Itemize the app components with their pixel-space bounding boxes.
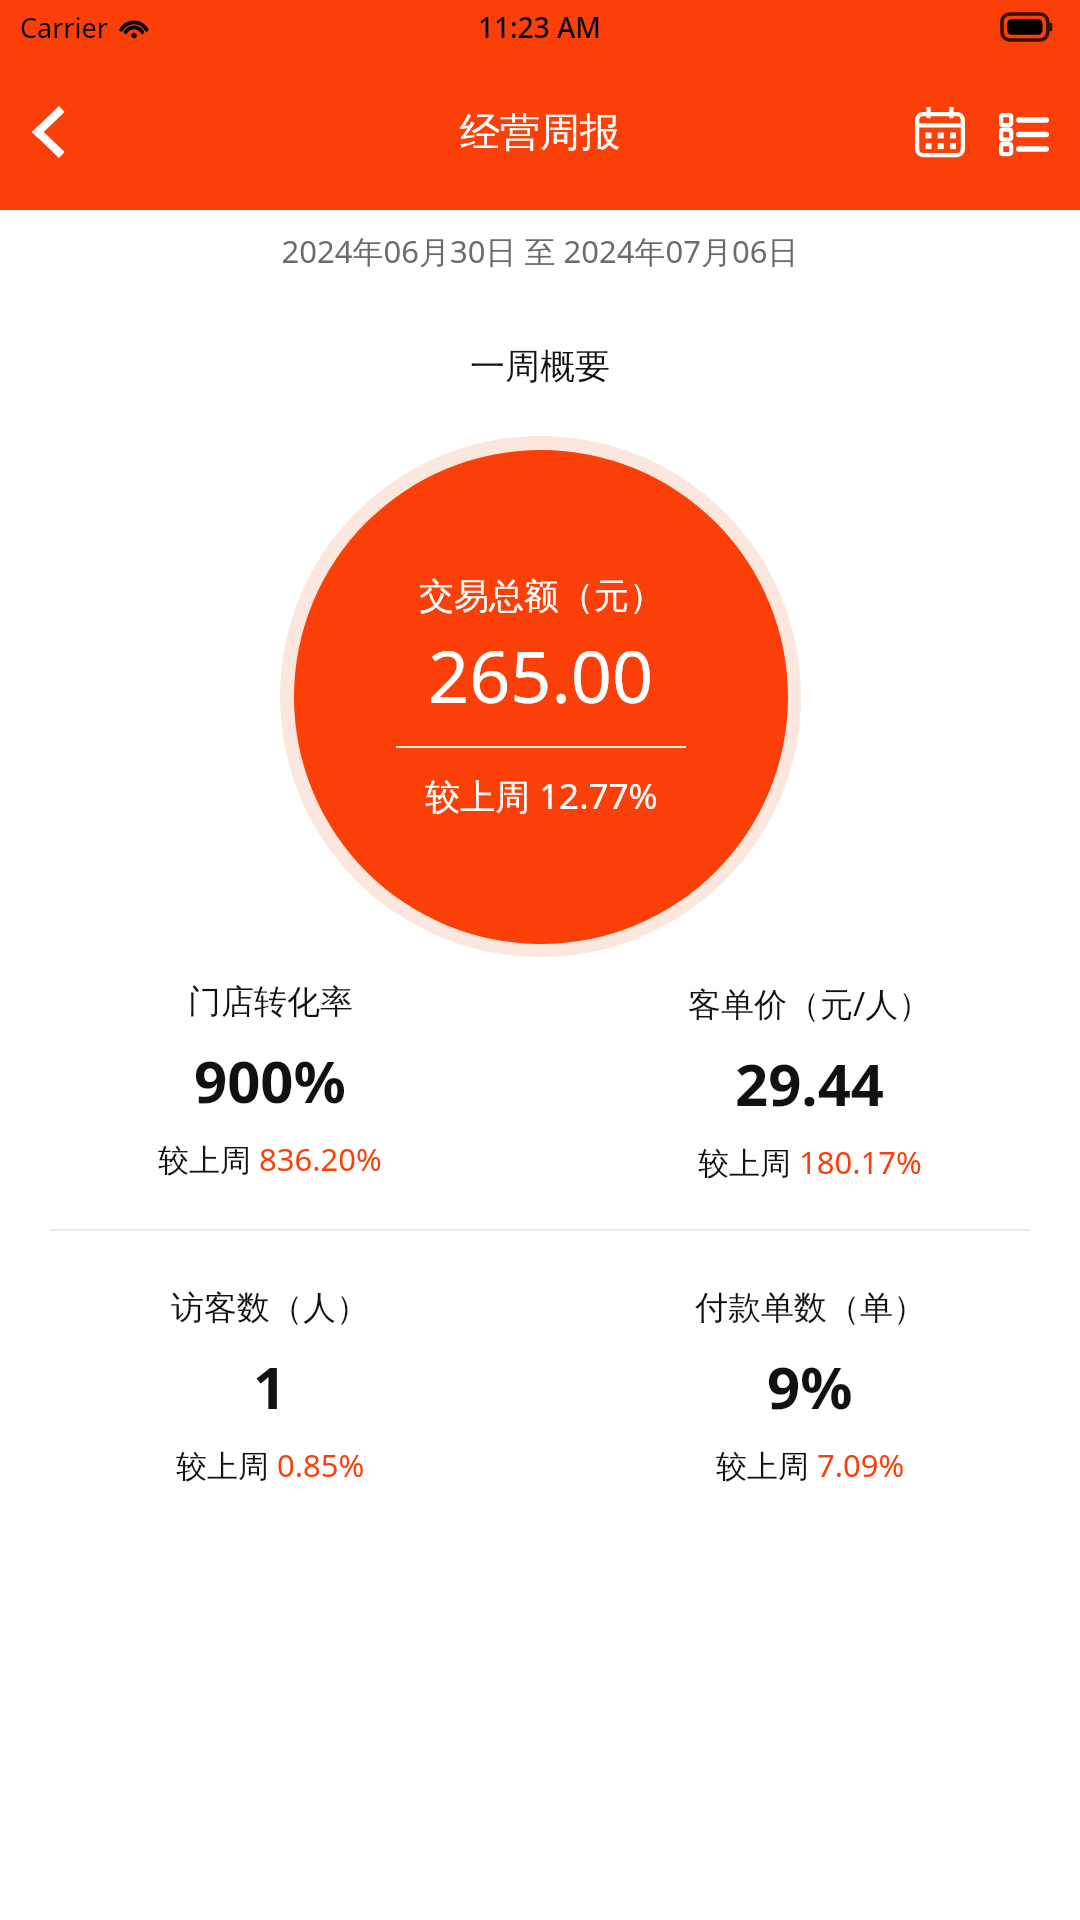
staticText: 900% [194, 1041, 346, 1120]
button[interactable]: List [982, 90, 1066, 174]
button[interactable]: Back [0, 84, 96, 180]
staticText: 2024年06月30日 至 2024年07月06日 [0, 230, 1080, 272]
staticText: 一周概要 [0, 344, 1080, 388]
staticText: 较上周 180.17% [698, 1141, 922, 1183]
button[interactable]: 交易总额（元） [294, 450, 788, 944]
staticText: 访客数（人） [171, 1287, 369, 1329]
staticText: 交易总额（元） [419, 574, 664, 618]
staticText: 较上周 836.20% [158, 1138, 382, 1180]
staticText: 较上周 12.77% [425, 772, 658, 820]
staticText: Carrier [20, 9, 108, 46]
staticText: 客单价（元/人） [688, 981, 932, 1026]
staticText: 较上周 7.09% [716, 1444, 905, 1486]
button[interactable]: 访客数（人） [0, 1283, 540, 1490]
staticText: 11:23 AM [478, 8, 602, 46]
staticText: 经营周报 [460, 107, 620, 157]
staticText: 265.00 [428, 626, 654, 724]
button[interactable]: Calendar [898, 90, 982, 174]
button[interactable]: 门店转化率 [0, 977, 540, 1184]
staticText: 1 [253, 1347, 287, 1426]
staticText: 9% [767, 1347, 853, 1426]
staticText: 较上周 0.85% [176, 1444, 365, 1486]
staticText: 付款单数（单） [695, 1287, 926, 1329]
staticText: 门店转化率 [188, 981, 353, 1023]
staticText: 29.44 [735, 1044, 885, 1123]
button[interactable]: 付款单数（单） [540, 1283, 1080, 1490]
button[interactable]: 客单价（元/人） [540, 977, 1080, 1187]
